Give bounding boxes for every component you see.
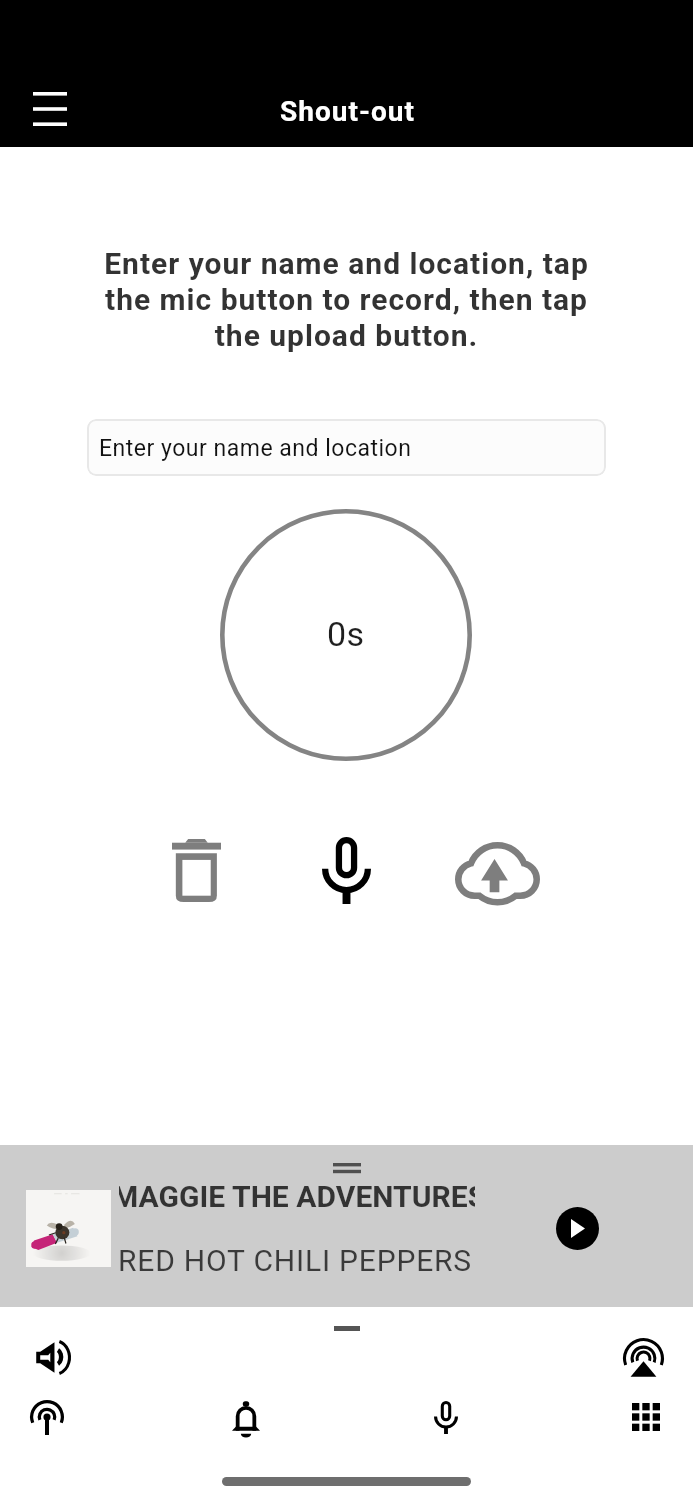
button[interactable]: Microphone — [401, 1388, 491, 1446]
button[interactable]: Upload — [448, 823, 546, 918]
button[interactable]: Recording timer — [220, 509, 472, 761]
staticText: RED HOT CHILI PEPPERS — [118, 1243, 472, 1278]
staticText: MAGGIE THE ADVENTURES OF RAIN DANCE — [119, 1179, 475, 1214]
button[interactable]: Delete recording — [147, 823, 245, 918]
button[interactable]: Enter your name and location — [87, 419, 606, 476]
button[interactable]: Menu — [8, 78, 92, 140]
button[interactable]: Apps — [601, 1388, 691, 1446]
button[interactable]: Notifications — [201, 1388, 291, 1446]
staticText: Enter your name and location, tap the mi… — [100, 246, 593, 353]
button[interactable]: Broadcast — [2, 1388, 92, 1446]
button[interactable]: Play — [542, 1193, 612, 1263]
button[interactable]: Cast — [600, 1327, 686, 1388]
staticText: Enter your name and location — [99, 435, 412, 462]
button[interactable]: MAGGIE THE ADVENTURES OF RAIN DANCE — [119, 1173, 482, 1219]
staticText: 0s — [327, 614, 365, 654]
button[interactable]: Volume — [9, 1327, 95, 1388]
staticText: Shout-out — [280, 95, 415, 128]
button[interactable]: Record — [297, 823, 395, 918]
